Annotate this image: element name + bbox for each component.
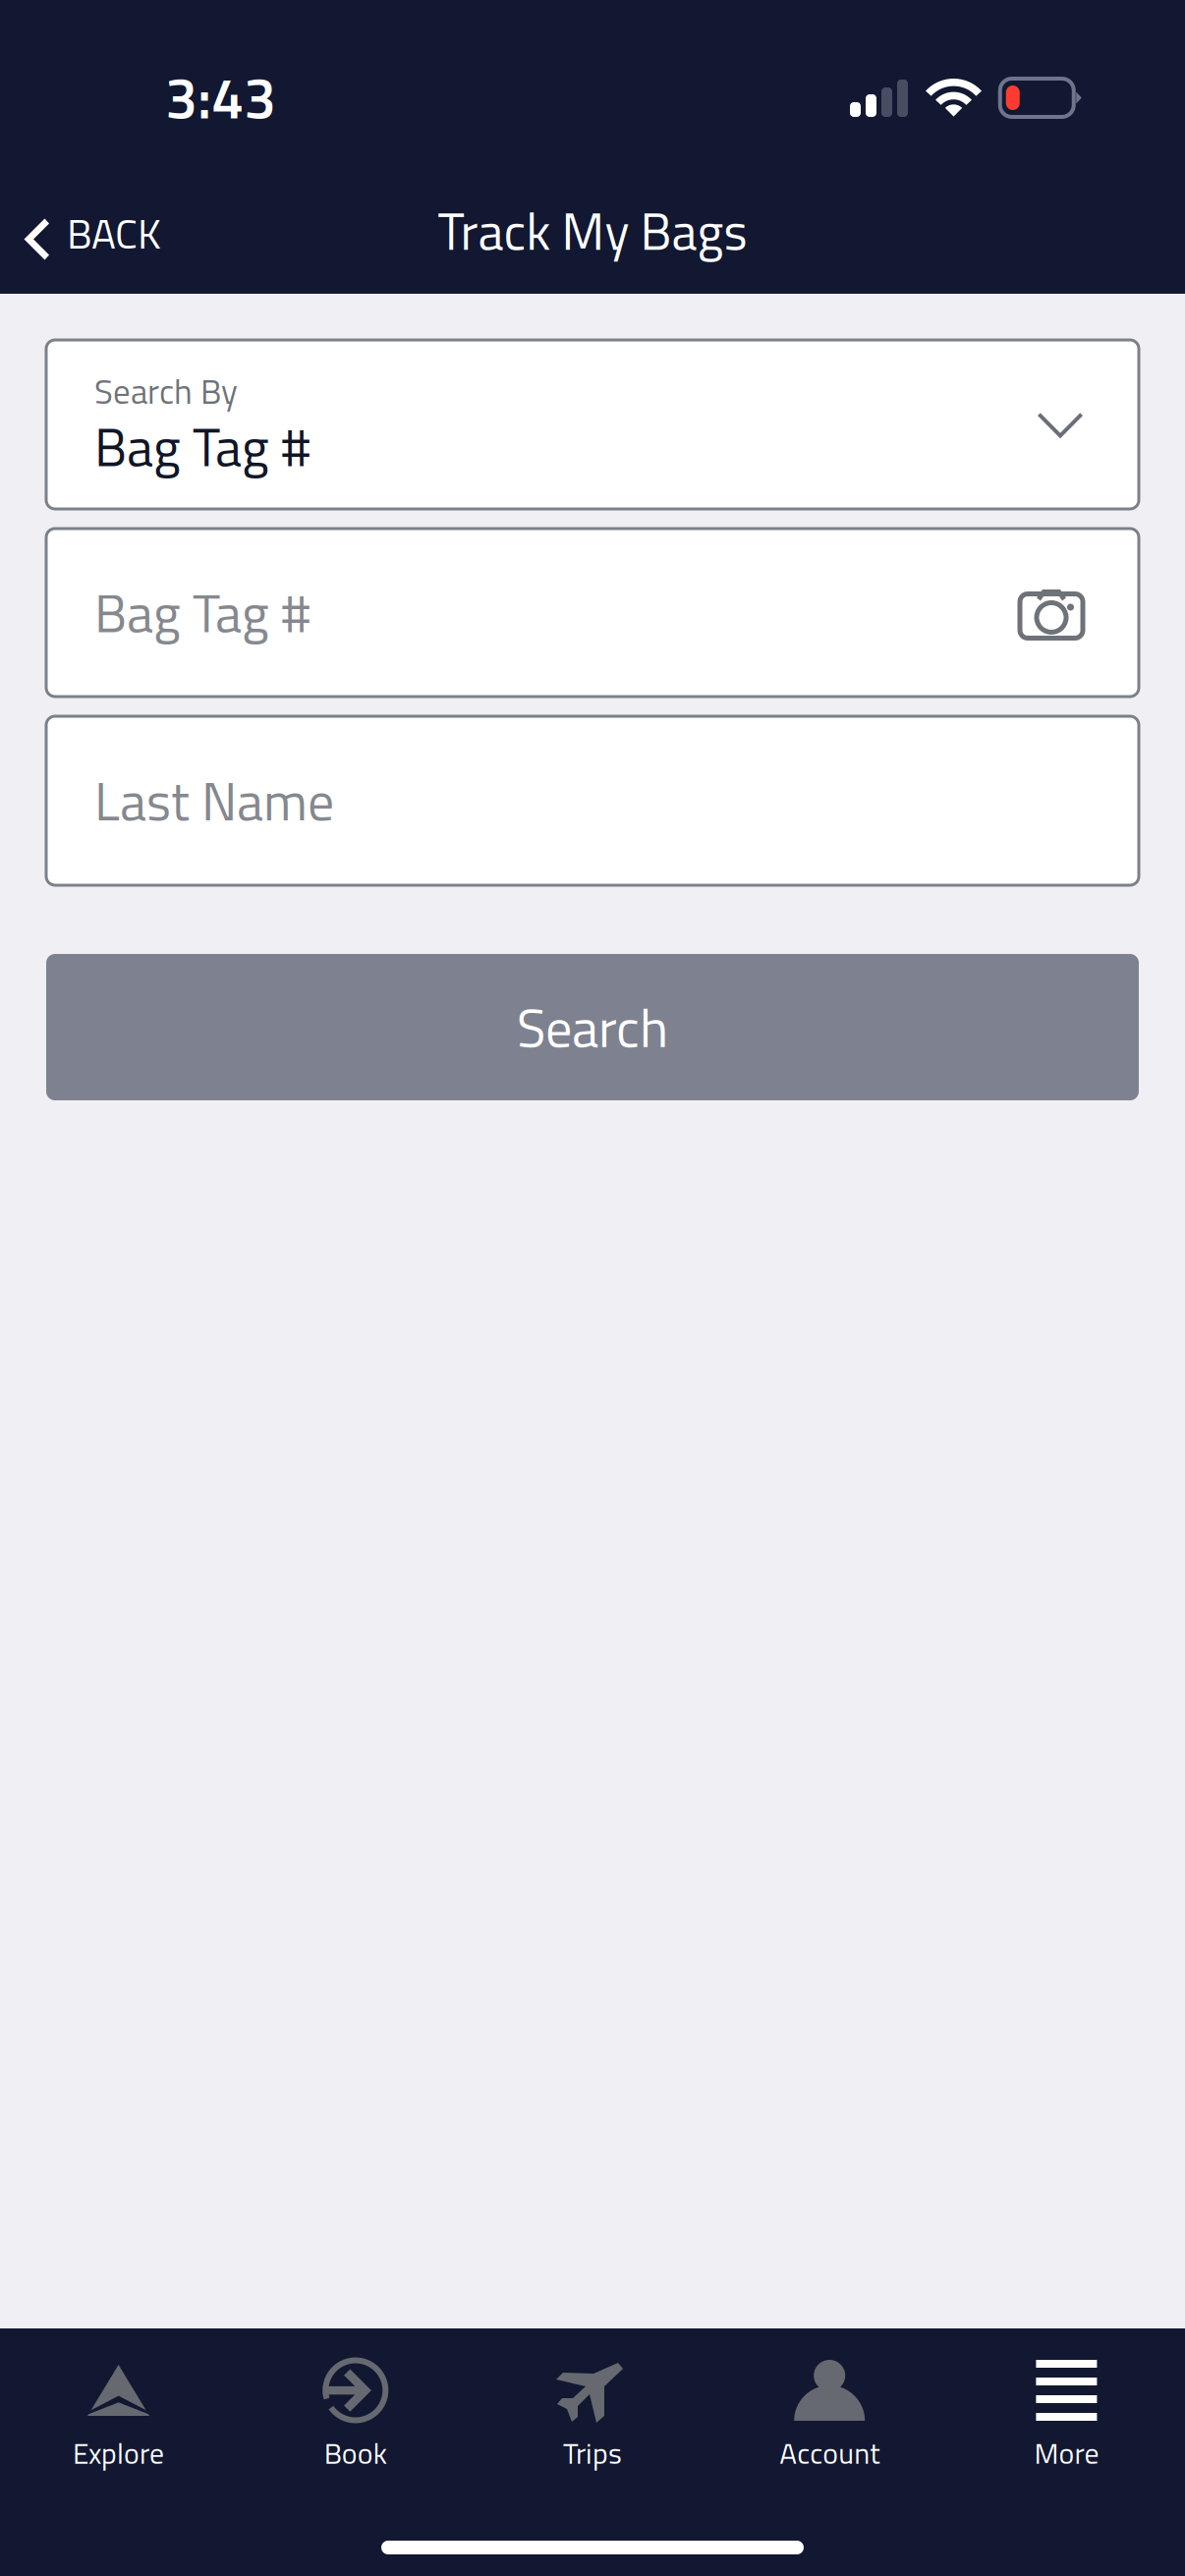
staticText: Bag Tag # (94, 572, 310, 653)
button[interactable]: BACK (0, 157, 185, 284)
button[interactable]: Account (711, 2328, 948, 2491)
staticText: 3:43 (165, 53, 276, 141)
button[interactable]: Bag Tag # (46, 529, 1139, 697)
staticText: Last Name (94, 761, 334, 841)
button[interactable]: Book (237, 2328, 474, 2491)
staticText: Bag Tag # (94, 406, 310, 487)
staticText: Search By (94, 365, 238, 417)
staticText: Explore (73, 2431, 164, 2475)
staticText: Track My Bags (438, 192, 747, 270)
staticText: More (1034, 2431, 1099, 2475)
staticText: Book (324, 2431, 387, 2475)
button[interactable]: Search By (46, 340, 1139, 509)
button[interactable]: Last Name (46, 716, 1139, 885)
button[interactable]: More (948, 2328, 1185, 2491)
button[interactable]: Trips (474, 2328, 711, 2491)
staticText: Search (517, 987, 668, 1068)
button[interactable]: Search (46, 954, 1139, 1100)
staticText: BACK (67, 202, 161, 265)
button[interactable]: Explore (0, 2328, 237, 2491)
staticText: Trips (563, 2431, 622, 2475)
staticText: Account (779, 2431, 880, 2475)
